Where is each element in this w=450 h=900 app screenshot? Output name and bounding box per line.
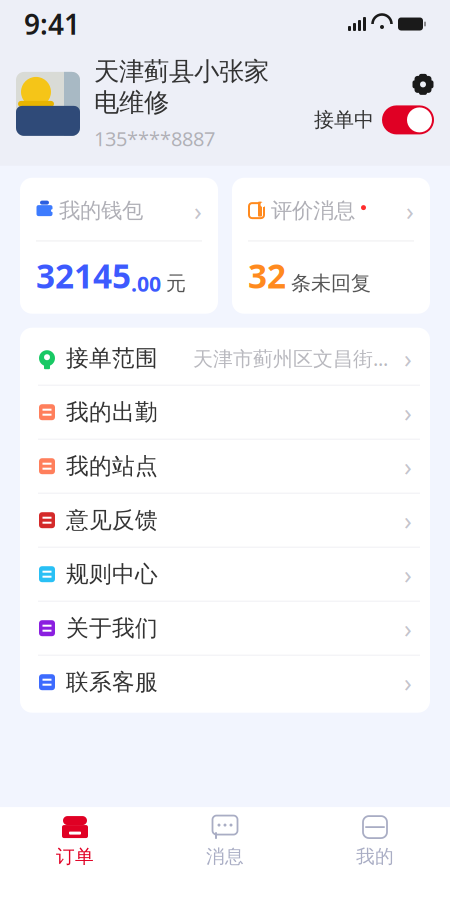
staticText: › <box>194 194 202 227</box>
staticText: 接单范围 <box>66 344 158 372</box>
button[interactable]: 接单范围 <box>20 332 430 385</box>
button[interactable]: 我的 <box>300 807 450 878</box>
staticText: › <box>404 503 412 537</box>
staticText: › <box>404 341 412 375</box>
button[interactable]: 设置 <box>412 73 434 95</box>
button[interactable]: 接单中 开关 <box>314 105 434 134</box>
staticText: 9:41 <box>24 5 80 43</box>
staticText: 接单中 <box>314 108 374 132</box>
staticText: › <box>404 449 412 483</box>
staticText: 我的出勤 <box>66 398 158 426</box>
button[interactable]: 评价消息 <box>232 178 430 314</box>
staticText: 元 <box>166 271 186 296</box>
button[interactable]: 我的站点 <box>20 440 430 493</box>
button[interactable]: 规则中心 <box>20 548 430 601</box>
staticText: 我的站点 <box>66 452 158 480</box>
staticText: 消息 <box>206 845 244 868</box>
staticText: 意见反馈 <box>66 506 158 534</box>
button[interactable]: 关于我们 <box>20 602 430 655</box>
staticText: 天津蓟县小张家电维修 <box>94 56 269 118</box>
staticText: 订单 <box>56 845 94 868</box>
staticText: 天津市蓟州区文昌街... <box>193 345 388 371</box>
button[interactable]: 联系客服 <box>20 656 430 709</box>
staticText: 32145 <box>36 253 131 298</box>
staticText: 我的 <box>356 845 394 868</box>
staticText: › <box>406 194 414 227</box>
button[interactable]: 我的出勤 <box>20 386 430 439</box>
button[interactable]: 意见反馈 <box>20 494 430 547</box>
staticText: › <box>404 611 412 645</box>
staticText: 32 <box>248 253 286 298</box>
staticText: 评价消息 <box>271 197 355 224</box>
staticText: .00 <box>131 269 161 298</box>
staticText: 我的钱包 <box>59 197 143 224</box>
staticText: 条未回复 <box>291 271 371 296</box>
staticText: › <box>404 557 412 591</box>
staticText: › <box>404 665 412 699</box>
staticText: 联系客服 <box>66 668 158 696</box>
staticText: › <box>404 395 412 429</box>
staticText: 135****8887 <box>94 125 215 152</box>
button[interactable]: 消息 <box>150 807 300 878</box>
staticText: 规则中心 <box>66 560 158 588</box>
button[interactable]: 我的钱包 <box>20 178 218 314</box>
staticText: 关于我们 <box>66 614 158 642</box>
button[interactable]: 订单 <box>0 807 150 878</box>
